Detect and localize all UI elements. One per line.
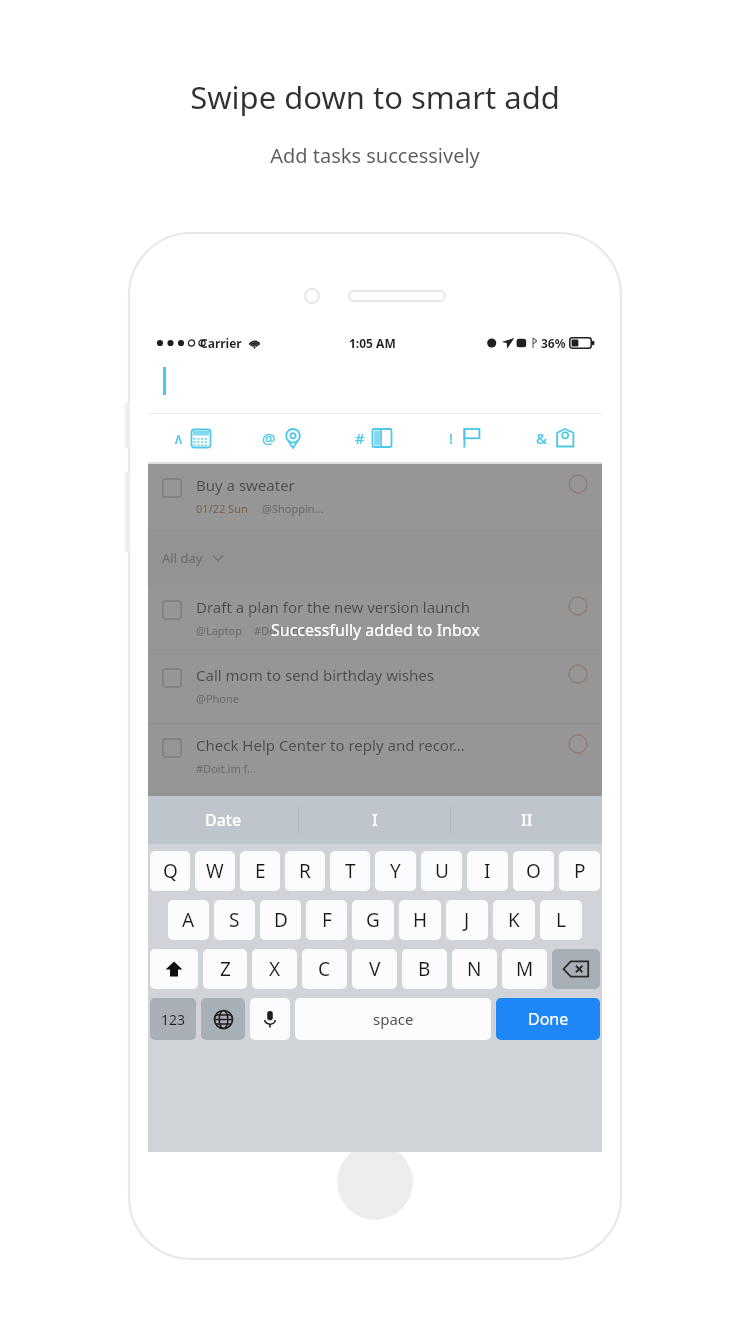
button[interactable]: U	[421, 851, 462, 891]
staticText: &	[536, 428, 548, 448]
button[interactable]: B	[402, 949, 447, 989]
button[interactable]: Date	[148, 414, 238, 462]
staticText: Add tasks successively	[270, 142, 480, 169]
button[interactable]: Backspace	[552, 949, 600, 989]
staticText: R	[299, 858, 311, 884]
staticText: T	[345, 858, 356, 884]
staticText: F	[322, 907, 332, 933]
staticText: I	[484, 858, 491, 884]
staticText: K	[508, 907, 520, 933]
staticText: S	[229, 907, 240, 933]
button[interactable]: G	[352, 900, 394, 940]
staticText: Z	[220, 956, 231, 982]
button[interactable]: I	[467, 851, 508, 891]
staticText: @Shoppin...	[262, 501, 324, 516]
button[interactable]: F	[306, 900, 347, 940]
button[interactable]: N	[452, 949, 497, 989]
button[interactable]: Priority	[420, 414, 511, 462]
button[interactable]: Switch keyboard	[201, 998, 245, 1040]
button[interactable]: Y	[375, 851, 416, 891]
staticText: C	[318, 956, 331, 982]
staticText: G	[366, 907, 380, 933]
staticText: Y	[390, 858, 401, 884]
button[interactable]: Location	[238, 414, 329, 462]
button[interactable]: Done	[496, 998, 600, 1040]
staticText: 36%	[541, 335, 566, 351]
staticText: N	[467, 956, 482, 982]
button[interactable]: W	[195, 851, 235, 891]
staticText: @Phone	[196, 691, 239, 706]
staticText: I	[372, 809, 378, 831]
button[interactable]: M	[502, 949, 547, 989]
staticText: All day	[162, 549, 203, 567]
button[interactable]: J	[446, 900, 488, 940]
button[interactable]: L	[540, 900, 582, 940]
button[interactable]: Check Help Center to reply and recor...	[148, 724, 602, 794]
button[interactable]: V	[352, 949, 397, 989]
button[interactable]: E	[240, 851, 280, 891]
staticText: 1:05 AM	[349, 335, 396, 351]
button[interactable]: X	[252, 949, 297, 989]
staticText: V	[369, 956, 381, 982]
staticText: Q	[163, 858, 178, 884]
staticText: @Laptop	[196, 623, 242, 638]
button[interactable]: K	[493, 900, 535, 940]
button[interactable]: 123	[150, 998, 196, 1040]
button[interactable]: space	[295, 998, 491, 1040]
button[interactable]: R	[285, 851, 325, 891]
staticText: #Doit.im f...	[196, 761, 256, 776]
button[interactable]: II	[451, 796, 602, 844]
button[interactable]: Dictate	[250, 998, 290, 1040]
button[interactable]: Project	[329, 414, 420, 462]
button[interactable]: T	[330, 851, 370, 891]
staticText: B	[418, 956, 431, 982]
button[interactable]: Tag	[511, 414, 602, 462]
button[interactable]: Buy a sweater	[148, 464, 602, 530]
button[interactable]: P	[559, 851, 600, 891]
button[interactable]: Z	[203, 949, 247, 989]
button[interactable]: S	[214, 900, 255, 940]
staticText: D	[274, 907, 288, 933]
staticText: A	[182, 907, 195, 933]
button[interactable]: I	[299, 796, 450, 844]
button[interactable]: Call mom to send birthday wishes	[148, 654, 602, 724]
staticText: Done	[528, 1008, 569, 1030]
staticText: Call mom to send birthday wishes	[196, 665, 434, 685]
staticText: U	[435, 858, 449, 884]
staticText: Carrier	[200, 335, 242, 351]
button[interactable]: D	[260, 900, 301, 940]
staticText: @	[262, 428, 276, 448]
button[interactable]: Q	[150, 851, 190, 891]
button[interactable]: A	[168, 900, 209, 940]
staticText: O	[526, 858, 541, 884]
button[interactable]: Shift	[150, 949, 198, 989]
staticText: P	[574, 858, 586, 884]
staticText: J	[464, 907, 470, 933]
button[interactable]: O	[513, 851, 554, 891]
staticText: ∧	[173, 430, 184, 447]
staticText: 01/22 Sun	[196, 501, 248, 516]
button[interactable]: Date	[148, 796, 298, 844]
staticText: II	[521, 809, 533, 831]
staticText: L	[556, 907, 566, 933]
staticText: Check Help Center to reply and recor...	[196, 735, 465, 755]
staticText: M	[516, 956, 534, 982]
staticText: H	[413, 907, 428, 933]
staticText: Swipe down to smart add	[190, 76, 560, 118]
button[interactable]: C	[302, 949, 347, 989]
staticText: 123	[161, 1010, 186, 1029]
staticText: Draft a plan for the new version launch	[196, 597, 471, 617]
staticText: #Doit.im f...	[254, 623, 314, 638]
staticText: W	[206, 858, 224, 884]
button[interactable]	[148, 354, 602, 414]
button[interactable]: Draft a plan for the new version launch	[148, 586, 602, 654]
staticText: !	[449, 428, 454, 448]
staticText: X	[269, 956, 281, 982]
staticText: space	[373, 1009, 414, 1029]
staticText: Buy a sweater	[196, 475, 295, 495]
button[interactable]: H	[399, 900, 441, 940]
staticText: E	[255, 858, 266, 884]
staticText: #	[355, 428, 365, 448]
staticText: Date	[205, 809, 242, 831]
staticText: Successfully added to Inbox	[271, 619, 480, 641]
